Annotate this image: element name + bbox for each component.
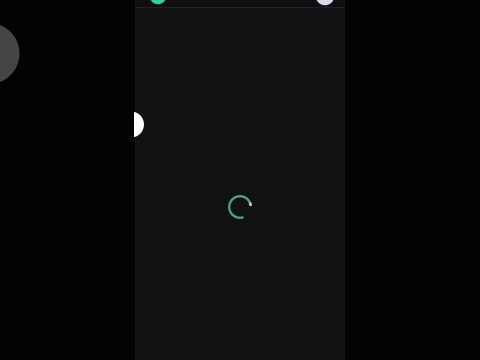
button[interactable]: Account bbox=[314, 0, 336, 7]
button[interactable]: Profile bbox=[148, 0, 167, 5]
